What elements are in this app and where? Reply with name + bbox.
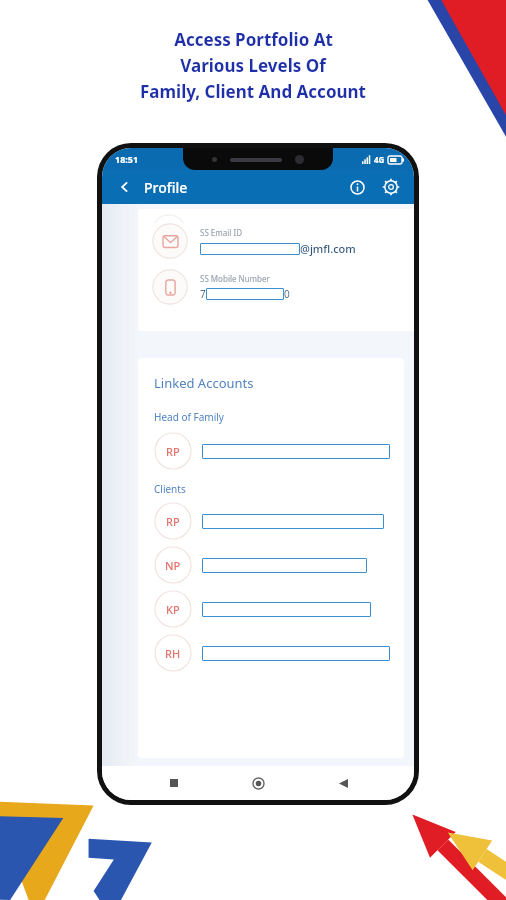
staticText: RP bbox=[166, 444, 180, 459]
button[interactable]: RH bbox=[154, 634, 390, 672]
button[interactable]: Information bbox=[344, 174, 370, 200]
staticText: Head of Family bbox=[154, 410, 224, 424]
staticText: 7 bbox=[200, 287, 206, 301]
staticText: 18:51 bbox=[115, 153, 139, 165]
button[interactable]: NP bbox=[154, 546, 390, 584]
staticText: Family, Client And Account bbox=[140, 80, 366, 103]
button[interactable]: SS Email ID bbox=[152, 223, 414, 259]
button[interactable]: KP bbox=[154, 590, 390, 628]
button[interactable]: Settings bbox=[378, 174, 404, 200]
button[interactable]: Back bbox=[330, 770, 356, 796]
staticText: @jmfl.com bbox=[300, 241, 356, 256]
staticText: RP bbox=[166, 514, 180, 529]
button[interactable]: Recent apps bbox=[161, 770, 187, 796]
staticText: Linked Accounts bbox=[154, 374, 254, 392]
staticText: Access Portfolio At bbox=[174, 28, 333, 51]
staticText: SS Mobile Number bbox=[200, 273, 270, 284]
staticText: SS Email ID bbox=[200, 227, 243, 238]
button[interactable]: RP bbox=[154, 502, 390, 540]
staticText: NP bbox=[165, 558, 181, 573]
button[interactable]: RP bbox=[154, 432, 390, 470]
button[interactable]: Home bbox=[245, 770, 271, 796]
staticText: 0 bbox=[284, 287, 290, 301]
staticText: KP bbox=[166, 602, 180, 617]
staticText: Clients bbox=[154, 482, 186, 496]
staticText: RH bbox=[165, 646, 181, 661]
staticText: 4G bbox=[374, 154, 385, 165]
button[interactable]: Back bbox=[112, 174, 138, 200]
staticText: Profile bbox=[144, 178, 188, 197]
button[interactable]: SS Mobile Number bbox=[152, 269, 414, 305]
staticText: Various Levels Of bbox=[180, 54, 326, 77]
